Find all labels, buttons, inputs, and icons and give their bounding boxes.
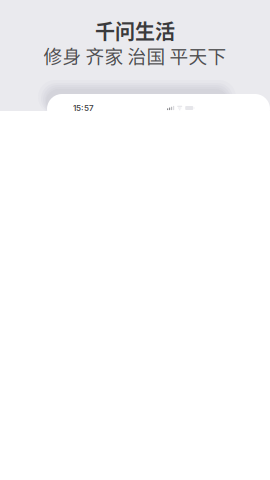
staticText: 千问生活 [95, 16, 175, 45]
staticText: 15:57 [73, 103, 94, 113]
staticText: 修身 齐家 治国 平天下 [43, 42, 226, 69]
